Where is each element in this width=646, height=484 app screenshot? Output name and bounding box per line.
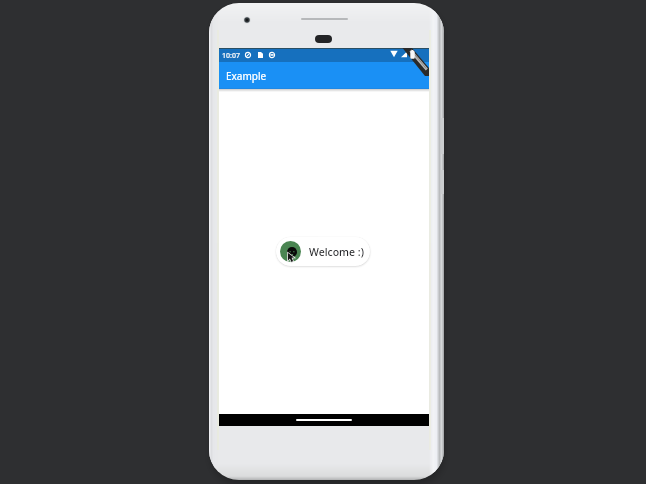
- staticText: Welcome :): [309, 245, 364, 259]
- other: Mobile signal: [401, 50, 407, 58]
- other: Wi-Fi: [390, 50, 398, 58]
- other: Battery: [410, 50, 415, 59]
- button[interactable]: Home: [296, 417, 352, 423]
- button[interactable]: Welcome :): [276, 237, 370, 266]
- other: Screenshot saved: [258, 52, 263, 58]
- other: Debugger attached: [269, 52, 275, 58]
- staticText: 10:07: [222, 51, 240, 61]
- staticText: Example: [226, 69, 267, 83]
- other: Silent mode: [245, 52, 251, 58]
- button[interactable]: Example app bar: [219, 62, 429, 89]
